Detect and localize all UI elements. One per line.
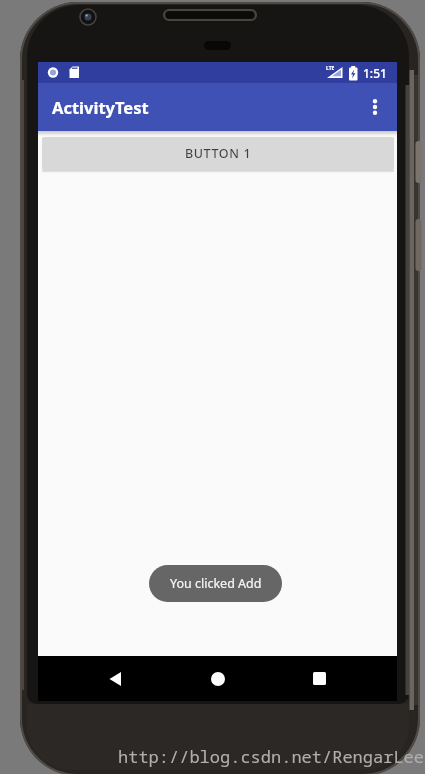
button[interactable] bbox=[194, 656, 242, 701]
staticText: BUTTON 1 bbox=[185, 145, 252, 162]
button[interactable]: BUTTON 1 bbox=[42, 137, 394, 170]
staticText: You clicked Add bbox=[170, 575, 262, 592]
staticText: LTE bbox=[326, 65, 335, 72]
button[interactable] bbox=[92, 656, 140, 701]
button[interactable] bbox=[353, 83, 397, 131]
staticText: http://blog.csdn.net/RengarLee bbox=[118, 745, 424, 768]
staticText: 1:51 bbox=[363, 65, 387, 81]
staticText: ActivityTest bbox=[52, 96, 149, 118]
button[interactable] bbox=[295, 656, 343, 701]
